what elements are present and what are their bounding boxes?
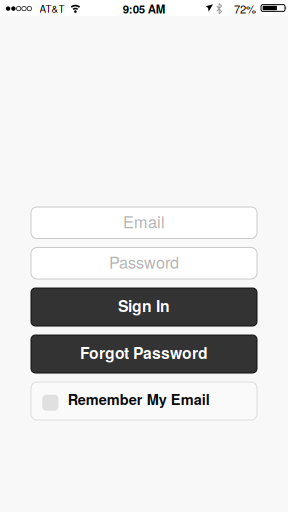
button[interactable]: Sign In <box>31 288 257 326</box>
staticText: Sign In <box>118 294 170 317</box>
staticText: Password <box>109 250 179 273</box>
staticText: Email <box>123 210 165 233</box>
button[interactable]: Remember My Email <box>31 382 257 420</box>
staticText: 72% <box>234 1 256 17</box>
staticText: 9:05 AM <box>123 0 166 17</box>
button[interactable]: Email <box>31 207 257 238</box>
button[interactable]: Forgot Password <box>31 335 257 373</box>
staticText: Forgot Password <box>80 341 208 364</box>
staticText: Remember My Email <box>68 389 210 409</box>
staticText: AT&T <box>40 1 65 16</box>
button[interactable]: Password <box>31 247 257 279</box>
